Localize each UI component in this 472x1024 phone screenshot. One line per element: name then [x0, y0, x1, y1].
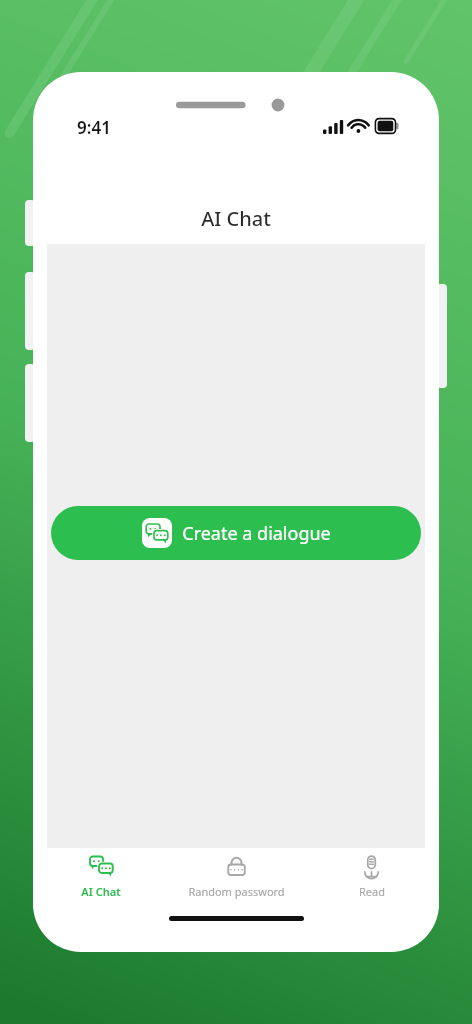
- staticText: 9:41: [77, 116, 111, 139]
- button[interactable]: Random password: [169, 848, 304, 908]
- staticText: Read: [359, 884, 385, 899]
- button[interactable]: AI Chat: [33, 848, 169, 908]
- staticText: Create a dialogue: [182, 521, 331, 546]
- staticText: Random password: [188, 884, 285, 899]
- button[interactable]: Read: [304, 848, 439, 908]
- staticText: AI Chat: [81, 884, 121, 899]
- staticText: AI Chat: [201, 205, 271, 232]
- button[interactable]: Create a dialogue: [51, 506, 421, 560]
